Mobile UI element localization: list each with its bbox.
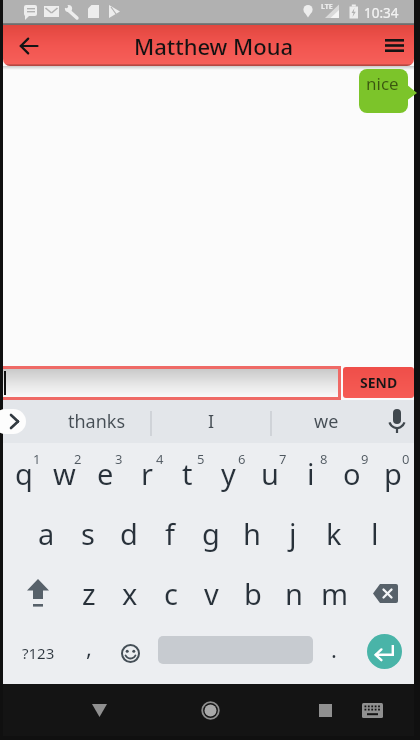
- staticText: I: [208, 409, 215, 434]
- button[interactable]: b: [232, 563, 273, 623]
- staticText: v: [204, 574, 219, 613]
- staticText: j: [289, 514, 297, 553]
- staticText: w: [53, 454, 76, 493]
- staticText: 7: [279, 450, 287, 468]
- staticText: thanks: [68, 409, 126, 434]
- button[interactable]: I: [161, 400, 261, 443]
- button[interactable]: [367, 634, 402, 669]
- staticText: 1: [33, 450, 41, 468]
- button[interactable]: q: [3, 443, 44, 503]
- button[interactable]: f: [149, 503, 190, 563]
- staticText: 9: [361, 450, 369, 468]
- staticText: s: [81, 514, 95, 553]
- staticText: ?123: [22, 643, 55, 663]
- staticText: nice: [366, 72, 399, 95]
- staticText: x: [122, 574, 138, 613]
- button[interactable]: ?123: [13, 623, 63, 683]
- staticText: e: [97, 454, 114, 493]
- staticText: p: [384, 454, 402, 493]
- button[interactable]: p: [372, 443, 413, 503]
- button[interactable]: [299, 684, 351, 736]
- button[interactable]: r: [126, 443, 167, 503]
- staticText: n: [285, 574, 303, 613]
- staticText: SEND: [360, 373, 398, 392]
- staticText: 2: [74, 450, 82, 468]
- staticText: 8: [320, 450, 328, 468]
- staticText: LTE: [321, 2, 333, 12]
- button[interactable]: a: [26, 503, 67, 563]
- button[interactable]: v: [191, 563, 232, 623]
- button[interactable]: t: [167, 443, 208, 503]
- button[interactable]: [3, 366, 341, 400]
- staticText: o: [343, 454, 361, 493]
- staticText: b: [244, 574, 262, 613]
- button[interactable]: s: [67, 503, 108, 563]
- button[interactable]: .: [313, 623, 354, 683]
- staticText: 0: [402, 450, 410, 468]
- button[interactable]: ,: [68, 623, 109, 683]
- staticText: r: [141, 454, 153, 493]
- button[interactable]: g: [190, 503, 231, 563]
- button[interactable]: y: [208, 443, 249, 503]
- staticText: f: [165, 514, 175, 553]
- button[interactable]: m: [314, 563, 355, 623]
- button[interactable]: c: [150, 563, 191, 623]
- staticText: 3: [115, 450, 123, 468]
- button[interactable]: i: [290, 443, 331, 503]
- staticText: t: [182, 454, 193, 493]
- button[interactable]: [360, 563, 410, 623]
- button[interactable]: e: [85, 443, 126, 503]
- staticText: h: [243, 514, 261, 553]
- staticText: 6: [238, 450, 246, 468]
- staticText: .: [331, 634, 337, 664]
- staticText: we: [314, 409, 339, 434]
- staticText: y: [221, 454, 236, 493]
- button[interactable]: j: [272, 503, 313, 563]
- button[interactable]: d: [108, 503, 149, 563]
- staticText: g: [202, 514, 220, 553]
- button[interactable]: n: [273, 563, 314, 623]
- button[interactable]: [13, 563, 63, 623]
- button[interactable]: [0, 409, 26, 434]
- button[interactable]: u: [249, 443, 290, 503]
- staticText: m: [321, 574, 349, 613]
- button[interactable]: [184, 684, 236, 736]
- staticText: i: [307, 454, 315, 493]
- staticText: k: [326, 514, 342, 553]
- staticText: q: [15, 454, 33, 493]
- button[interactable]: thanks: [43, 400, 151, 443]
- staticText: c: [164, 574, 178, 613]
- staticText: ,: [86, 632, 92, 662]
- staticText: 5: [197, 450, 205, 468]
- staticText: Matthew Moua: [134, 31, 294, 61]
- button[interactable]: x: [109, 563, 150, 623]
- staticText: l: [371, 514, 379, 553]
- button[interactable]: SEND: [343, 367, 414, 398]
- button[interactable]: o: [331, 443, 372, 503]
- staticText: a: [38, 514, 55, 553]
- button[interactable]: [73, 684, 125, 736]
- button[interactable]: [379, 404, 414, 440]
- button[interactable]: [9, 25, 49, 66]
- button[interactable]: z: [68, 563, 109, 623]
- staticText: d: [120, 514, 138, 553]
- staticText: 4: [156, 450, 164, 468]
- staticText: u: [261, 454, 279, 493]
- staticText: 10:34: [364, 4, 399, 22]
- button[interactable]: k: [313, 503, 354, 563]
- staticText: z: [82, 574, 96, 613]
- button[interactable]: nice: [359, 69, 417, 116]
- button[interactable]: [110, 623, 151, 683]
- button[interactable]: h: [231, 503, 272, 563]
- button[interactable]: [374, 25, 414, 66]
- button[interactable]: w: [44, 443, 85, 503]
- button[interactable]: l: [354, 503, 395, 563]
- button[interactable]: [349, 684, 395, 736]
- button[interactable]: we: [281, 400, 371, 443]
